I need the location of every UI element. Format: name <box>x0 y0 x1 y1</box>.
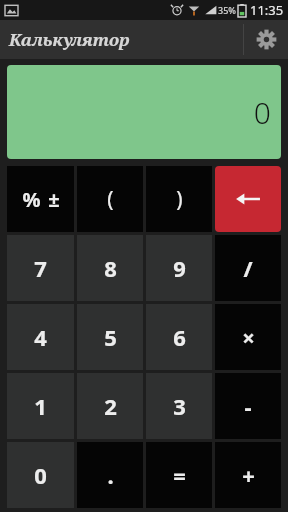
staticText: 35% <box>218 4 236 16</box>
staticText: Калькулятор <box>9 28 130 51</box>
button[interactable]: 2 <box>77 373 143 439</box>
button[interactable]: / <box>215 235 281 301</box>
staticText: 7 <box>34 253 47 283</box>
staticText: 5 <box>104 322 117 352</box>
staticText: 0 <box>34 460 47 490</box>
button[interactable]: 1 <box>7 373 74 439</box>
staticText: = <box>173 460 186 490</box>
button[interactable]: 0 <box>7 65 281 159</box>
staticText: 8 <box>104 253 117 283</box>
staticText: 0 <box>253 92 271 133</box>
staticText: 3 <box>173 391 186 421</box>
button[interactable]: ( <box>77 166 143 232</box>
staticText: 6 <box>173 322 186 352</box>
staticText: 4 <box>34 322 47 352</box>
staticText: - <box>244 391 252 421</box>
staticText: ) <box>176 185 183 214</box>
button[interactable]: ) <box>146 166 212 232</box>
staticText: / <box>243 253 253 283</box>
staticText: × <box>242 322 255 352</box>
staticText: + <box>242 460 255 490</box>
button[interactable]: - <box>215 373 281 439</box>
button[interactable]: Backspace <box>215 166 281 232</box>
staticText: 11:35 <box>250 1 284 19</box>
button[interactable]: . <box>77 442 143 508</box>
staticText: 1 <box>34 391 47 421</box>
button[interactable]: 0 <box>7 442 74 508</box>
button[interactable]: 7 <box>7 235 74 301</box>
staticText: 9 <box>173 253 186 283</box>
staticText: % <box>22 186 41 213</box>
staticText: ± <box>48 186 60 213</box>
button[interactable]: 6 <box>146 304 212 370</box>
staticText: . <box>107 460 114 490</box>
button[interactable]: + <box>215 442 281 508</box>
button[interactable]: 8 <box>77 235 143 301</box>
button[interactable]: % <box>7 166 74 232</box>
button[interactable]: = <box>146 442 212 508</box>
button[interactable]: 3 <box>146 373 212 439</box>
button[interactable]: 4 <box>7 304 74 370</box>
button[interactable]: 5 <box>77 304 143 370</box>
button[interactable]: 9 <box>146 235 212 301</box>
staticText: 2 <box>104 391 117 421</box>
staticText: ( <box>107 185 114 214</box>
button[interactable]: Settings <box>244 20 288 59</box>
button[interactable]: × <box>215 304 281 370</box>
